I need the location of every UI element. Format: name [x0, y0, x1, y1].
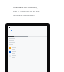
staticText: Available on Android, iOS, web: [13, 5, 41, 8]
button[interactable]: [8, 54, 47, 58]
button[interactable]: [8, 46, 47, 50]
staticText: Day 1. Explore all of the new: [13, 9, 41, 12]
staticText: multiple languages supported: [13, 13, 41, 16]
button[interactable]: [8, 50, 47, 54]
